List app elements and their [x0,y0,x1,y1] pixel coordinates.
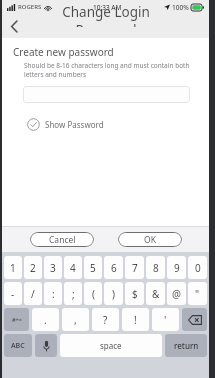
button[interactable]: space [60,334,162,357]
button[interactable]: Show Password [27,118,104,131]
staticText: ; [72,287,75,301]
staticText: ! [134,313,137,327]
button[interactable]: / [24,282,42,305]
staticText: / [31,287,35,301]
staticText: Show Password [45,119,104,130]
button[interactable]: OK [118,232,182,247]
staticText: space [100,340,122,351]
button[interactable] [23,86,190,103]
button[interactable]: $ [125,282,144,305]
button[interactable]: 0 [188,256,207,279]
staticText: Should be 8-16 characters long and must … [24,61,191,79]
button[interactable]: 3 [44,256,62,279]
button[interactable]: 1 [4,256,22,279]
staticText: 6 [111,261,117,275]
staticText: Create new password [13,45,114,59]
staticText: return [174,340,199,351]
staticText: ABC [11,341,25,351]
button[interactable]: - [4,282,22,305]
staticText: Password [75,21,137,27]
staticText: 5 [90,261,96,275]
button[interactable]: 4 [64,256,82,279]
staticText: ROGERS [18,3,42,11]
staticText: 7 [132,261,138,275]
staticText: 0 [195,261,201,275]
staticText: $ [132,287,138,301]
button[interactable]: Back [2,14,26,38]
staticText: @ [172,287,181,301]
staticText: & [152,287,160,301]
button[interactable]: , [62,308,89,331]
button[interactable]: ' [152,308,179,331]
staticText: 9 [174,261,180,275]
staticText: #+= [12,316,22,323]
staticText: 10:33 AM [93,3,122,12]
staticText: . [44,313,47,327]
button[interactable]: 9 [167,256,186,279]
button[interactable]: . [32,308,59,331]
staticText: : [52,287,55,301]
staticText: 1 [10,261,16,275]
button[interactable]: Delete [182,308,207,331]
button[interactable]: : [44,282,62,305]
staticText: 3 [50,261,56,275]
button[interactable]: #+= [4,308,29,331]
button[interactable]: ; [64,282,82,305]
staticText: ? [103,313,108,327]
staticText: 2 [30,261,36,275]
button[interactable]: @ [167,282,186,305]
button[interactable]: Dictation [35,334,57,357]
staticText: " [195,287,200,301]
staticText: ) [112,287,115,301]
button[interactable]: ( [84,282,102,305]
button[interactable]: ! [122,308,149,331]
button[interactable]: 8 [146,256,165,279]
staticText: Change Login [62,3,150,21]
staticText: OK [144,234,156,246]
button[interactable]: 6 [104,256,123,279]
button[interactable]: ? [92,308,119,331]
staticText: - [11,287,15,301]
button[interactable]: ) [104,282,123,305]
button[interactable]: return [165,334,207,357]
staticText: Cancel [49,234,76,246]
staticText: 100% [172,3,189,12]
button[interactable]: & [146,282,165,305]
button[interactable]: 2 [24,256,42,279]
staticText: 8 [153,261,159,275]
staticText: ' [164,313,167,327]
staticText: 4 [70,261,76,275]
staticText: , [74,313,77,327]
button[interactable]: " [188,282,207,305]
staticText: ( [92,287,95,301]
button[interactable]: ABC [4,334,32,357]
button[interactable]: 5 [84,256,102,279]
button[interactable]: Cancel [30,232,94,247]
button[interactable]: 7 [125,256,144,279]
